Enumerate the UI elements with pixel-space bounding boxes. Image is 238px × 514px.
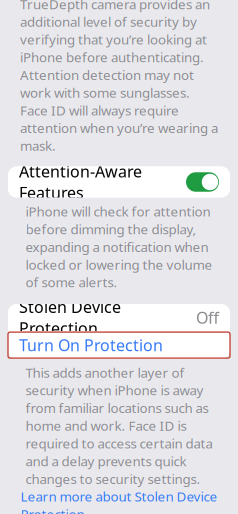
staticText: Learn more about Stolen Device Protectio… (20, 488, 217, 514)
staticText: TrueDepth camera provides an additional … (20, 0, 218, 154)
staticText: This adds another layer of security when… (25, 364, 212, 487)
staticText: Turn On Protection (19, 334, 163, 356)
button[interactable]: Learn more about Stolen Device Protectio… (20, 488, 217, 514)
staticText: iPhone will check for attention before d… (25, 202, 212, 291)
staticText: Stolen Device Protection (19, 296, 121, 339)
button[interactable]: Attention-Aware Features (8, 166, 230, 197)
staticText: Off (196, 307, 219, 328)
staticText: Attention-Aware Features (19, 161, 142, 203)
button[interactable]: Turn On Protection (8, 332, 230, 359)
button[interactable]: Stolen Device Protection (8, 304, 230, 331)
